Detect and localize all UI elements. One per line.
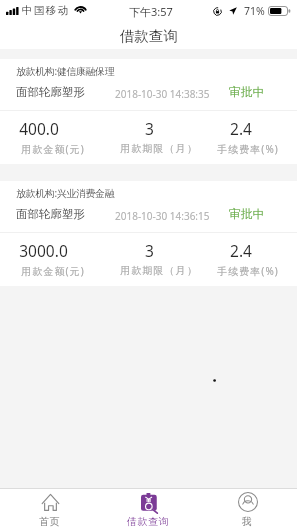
staticText: 3 bbox=[145, 118, 154, 139]
button[interactable]: 我 bbox=[198, 489, 297, 528]
staticText: 2018-10-30 14:38:35 bbox=[115, 87, 210, 101]
staticText: 下午3:57 bbox=[129, 4, 173, 19]
staticText: 审批中 bbox=[229, 207, 265, 222]
button[interactable]: 首页 bbox=[0, 489, 99, 528]
staticText: 手续费率(%) bbox=[217, 142, 279, 156]
staticText: 2018-10-30 14:36:15 bbox=[115, 209, 210, 223]
staticText: 中国移动 bbox=[22, 4, 70, 17]
staticText: 借款查询 bbox=[127, 515, 170, 528]
staticText: 用款金额(元) bbox=[21, 142, 85, 156]
button[interactable]: 放款机构:健信康融保理 bbox=[0, 59, 297, 164]
staticText: 2.4 bbox=[230, 118, 252, 139]
staticText: 3000.0 bbox=[19, 240, 68, 261]
button[interactable]: 放款机构:兴业消费金融 bbox=[0, 181, 297, 286]
staticText: 手续费率(%) bbox=[217, 264, 279, 278]
staticText: 用款期限（月） bbox=[120, 264, 198, 277]
staticText: 71% bbox=[244, 4, 265, 18]
button[interactable]: 借款查询 bbox=[99, 489, 198, 528]
staticText: 用款期限（月） bbox=[120, 142, 198, 155]
staticText: 面部轮廓塑形 bbox=[16, 207, 85, 221]
staticText: 放款机构:兴业消费金融 bbox=[16, 186, 115, 200]
staticText: 审批中 bbox=[229, 85, 265, 100]
staticText: 我 bbox=[242, 515, 253, 528]
staticText: 借款查询 bbox=[120, 27, 178, 45]
staticText: 用款金额(元) bbox=[21, 264, 85, 278]
staticText: 首页 bbox=[39, 515, 61, 528]
staticText: 2.4 bbox=[230, 240, 252, 261]
staticText: 放款机构:健信康融保理 bbox=[16, 64, 115, 78]
staticText: 面部轮廓塑形 bbox=[16, 85, 85, 99]
staticText: 400.0 bbox=[19, 118, 59, 139]
staticText: 3 bbox=[145, 240, 154, 261]
